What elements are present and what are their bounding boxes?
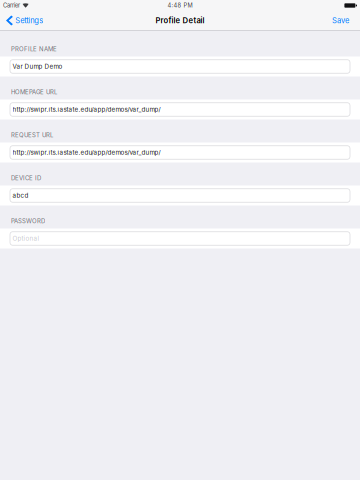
staticText: Optional — [13, 235, 40, 242]
staticText: Settings — [15, 16, 43, 25]
button[interactable]: Settings — [0, 11, 49, 30]
button[interactable]: Var Dump Demo — [0, 56, 360, 76]
staticText: Profile Detail — [155, 16, 204, 25]
button[interactable]: http://swipr.its.iastate.edu/app/demos/v… — [0, 99, 360, 119]
staticText: REQUEST URL — [11, 131, 53, 139]
staticText: http://swipr.its.iastate.edu/app/demos/v… — [13, 106, 161, 113]
staticText: PASSWORD — [11, 217, 45, 225]
staticText: http://swipr.its.iastate.edu/app/demos/v… — [13, 149, 161, 156]
staticText: abcd — [13, 192, 29, 199]
button[interactable]: Save — [324, 11, 360, 30]
button[interactable]: Optional — [0, 228, 360, 248]
staticText: Var Dump Demo — [13, 63, 63, 70]
staticText: PROFILE NAME — [11, 45, 57, 53]
staticText: 4:48 PM — [167, 2, 192, 9]
staticText: HOMEPAGE URL — [11, 88, 57, 96]
staticText: Save — [332, 16, 349, 25]
staticText: Carrier — [3, 2, 20, 9]
staticText: DEVICE ID — [11, 174, 41, 182]
button[interactable]: http://swipr.its.iastate.edu/app/demos/v… — [0, 142, 360, 162]
button[interactable]: abcd — [0, 185, 360, 205]
